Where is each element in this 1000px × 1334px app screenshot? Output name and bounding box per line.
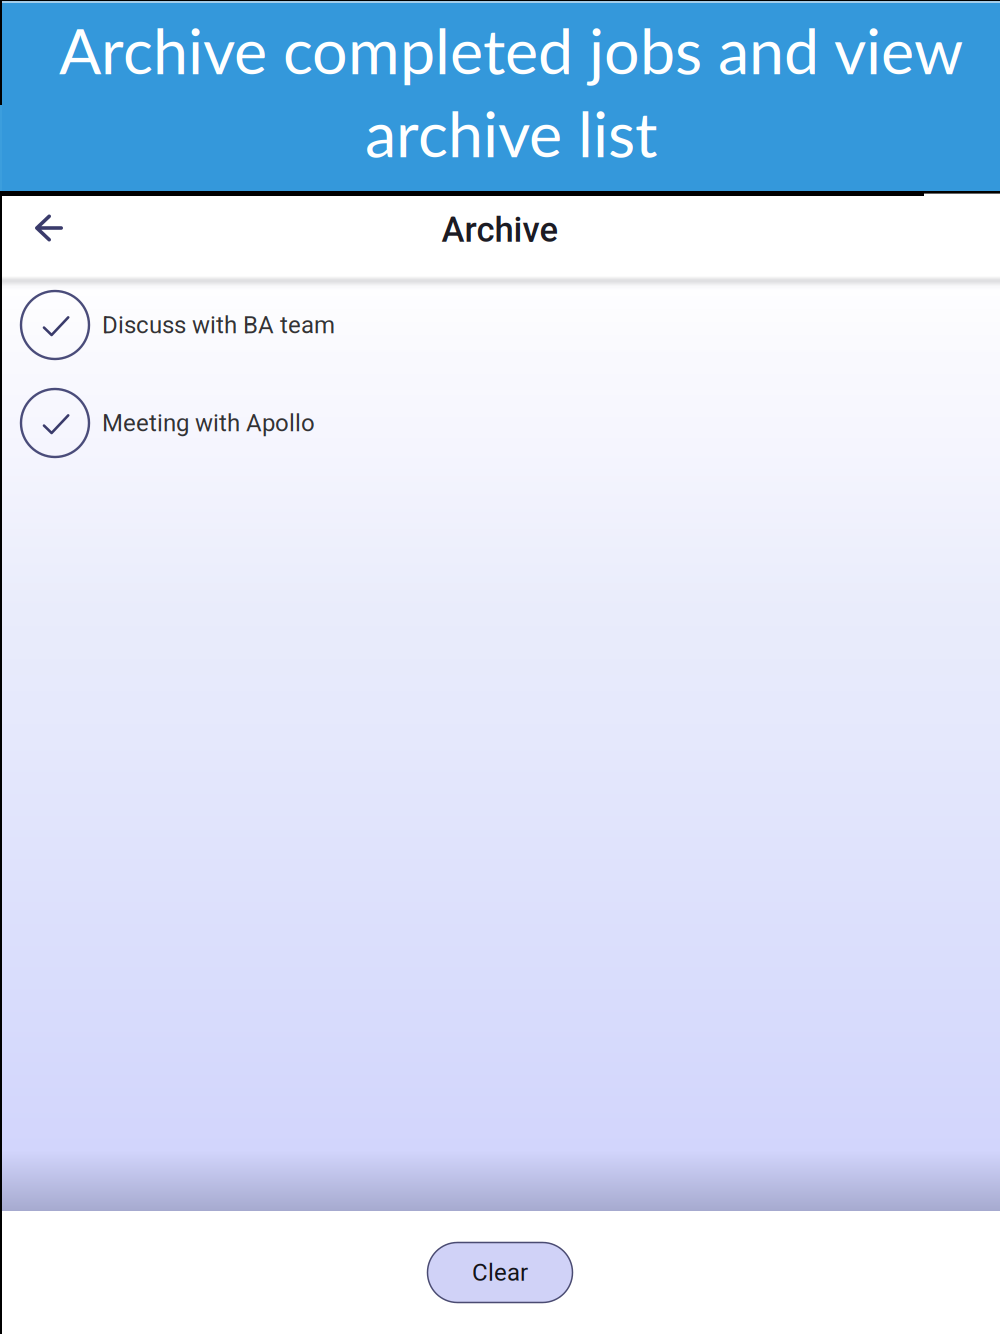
staticText: Discuss with BA team xyxy=(102,311,335,339)
button[interactable]: Meeting with Apollo xyxy=(0,374,1000,472)
staticText: Clear xyxy=(472,1258,528,1286)
staticText: Archive completed jobs and view xyxy=(59,12,963,87)
button[interactable]: Discuss with BA team xyxy=(0,276,1000,374)
staticText: Archive xyxy=(441,210,558,250)
button[interactable]: Clear xyxy=(427,1242,572,1302)
staticText: archive list xyxy=(365,95,657,171)
staticText: Meeting with Apollo xyxy=(102,409,315,437)
button[interactable]: Back xyxy=(14,195,84,265)
